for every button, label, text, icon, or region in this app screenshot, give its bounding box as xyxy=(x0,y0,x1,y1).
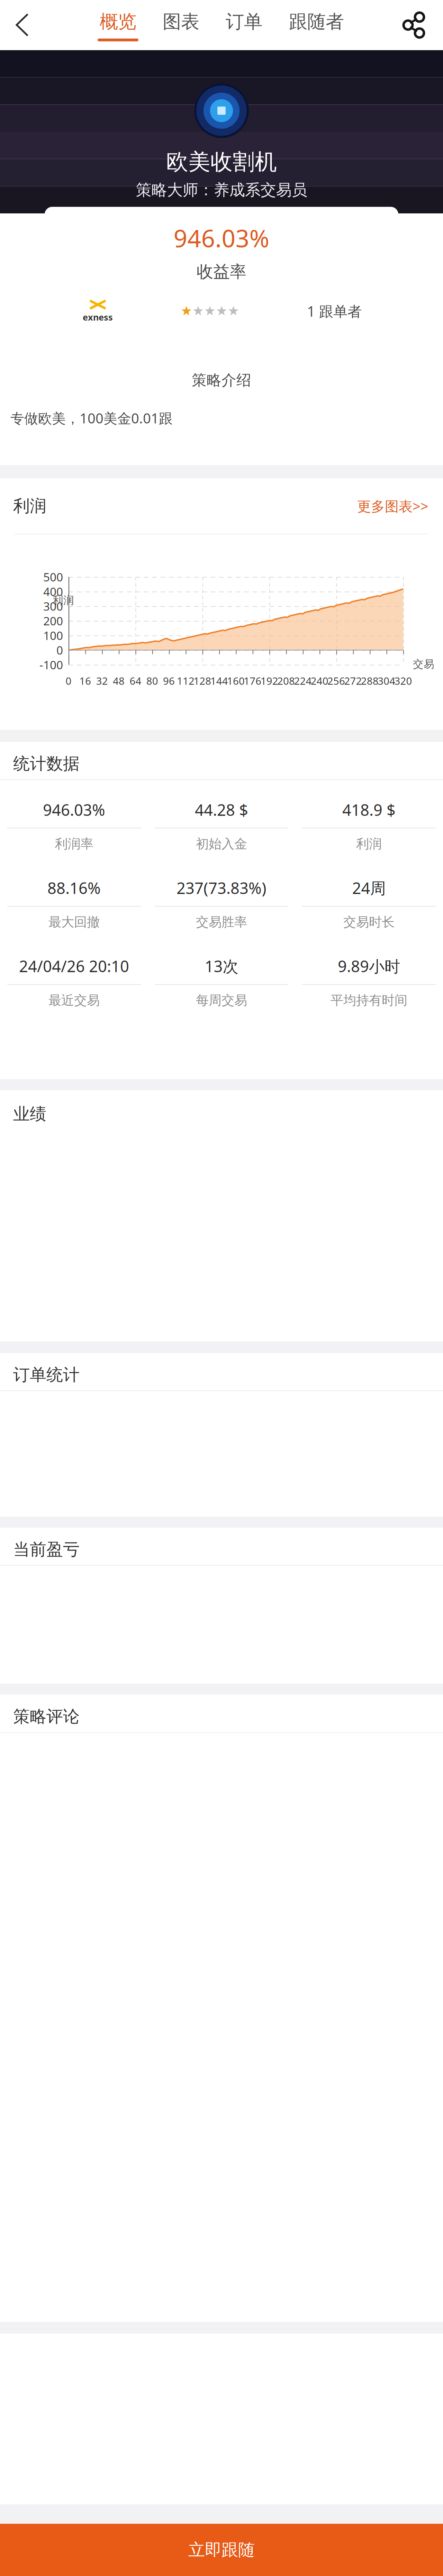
staticText: 利润率 xyxy=(55,836,93,852)
staticText: 96 xyxy=(163,674,175,688)
staticText: 192 xyxy=(261,674,278,688)
staticText: 策略介绍 xyxy=(192,371,251,389)
staticText: 160 xyxy=(227,674,245,688)
staticText: 418.9 $ xyxy=(342,799,396,820)
staticText: 946.03% xyxy=(174,222,269,254)
staticText: 初始入金 xyxy=(196,836,247,852)
staticText: 88.16% xyxy=(47,877,101,898)
staticText: 最近交易 xyxy=(48,992,100,1008)
staticText: 304 xyxy=(378,674,395,688)
staticText: 利润 xyxy=(53,594,74,607)
staticText: 240 xyxy=(311,674,328,688)
staticText: 24周 xyxy=(352,877,386,898)
staticText: 立即跟随 xyxy=(188,2540,255,2560)
staticText: 200 xyxy=(43,613,63,629)
staticText: 64 xyxy=(130,674,141,688)
staticText: 跟随者 xyxy=(289,10,344,33)
staticText: 237(73.83%) xyxy=(177,877,266,898)
staticText: 144 xyxy=(210,674,228,688)
staticText: exness xyxy=(83,311,113,323)
staticText: 图表 xyxy=(163,10,199,33)
button[interactable]: 订单 xyxy=(225,0,263,50)
staticText: 24/04/26 20:10 xyxy=(19,956,129,976)
button[interactable]: 更多图表>> xyxy=(357,494,428,518)
staticText: 9.89小时 xyxy=(338,956,400,976)
staticText: 16 xyxy=(79,674,91,688)
staticText: 208 xyxy=(277,674,295,688)
staticText: 112 xyxy=(177,674,195,688)
staticText: 288 xyxy=(361,674,379,688)
staticText: 专做欧美，100美金0.01跟 xyxy=(10,409,173,427)
staticText: 500 xyxy=(43,569,63,585)
staticText: 利润 xyxy=(13,496,46,516)
staticText: 13次 xyxy=(205,956,238,976)
staticText: 收益率 xyxy=(197,262,246,282)
staticText: 最大回撤 xyxy=(48,914,100,930)
staticText: 策略大师：养成系交易员 xyxy=(136,180,307,200)
staticText: 48 xyxy=(113,674,125,688)
staticText: 交易胜率 xyxy=(196,914,247,930)
staticText: 订单统计 xyxy=(13,1365,80,1385)
staticText: 400 xyxy=(43,584,63,599)
button[interactable]: 概览 xyxy=(98,0,138,50)
staticText: 概览 xyxy=(100,10,136,33)
staticText: 176 xyxy=(244,674,261,688)
staticText: 100 xyxy=(43,628,63,643)
staticText: 256 xyxy=(327,674,345,688)
staticText: 32 xyxy=(96,674,108,688)
staticText: 128 xyxy=(194,674,211,688)
staticText: 300 xyxy=(43,599,63,614)
staticText: 224 xyxy=(294,674,312,688)
button[interactable]: 跟随者 xyxy=(288,0,345,50)
staticText: 策略评论 xyxy=(13,1706,80,1727)
button[interactable]: Share xyxy=(395,0,433,50)
staticText: 每周交易 xyxy=(196,992,247,1008)
staticText: 1 跟单者 xyxy=(307,302,362,321)
staticText: 272 xyxy=(344,674,362,688)
staticText: 订单 xyxy=(226,10,262,33)
button[interactable]: Back xyxy=(15,0,29,50)
staticText: 欧美收割机 xyxy=(166,148,277,176)
staticText: 平均持有时间 xyxy=(331,992,407,1008)
staticText: 当前盈亏 xyxy=(13,1539,80,1560)
staticText: 更多图表>> xyxy=(357,497,428,515)
staticText: 44.28 $ xyxy=(195,799,248,820)
staticText: 0 xyxy=(56,642,63,658)
button[interactable]: 图表 xyxy=(162,0,200,50)
staticText: 统计数据 xyxy=(13,753,80,774)
staticText: 320 xyxy=(394,674,412,688)
staticText: 80 xyxy=(146,674,158,688)
staticText: 利润 xyxy=(356,836,382,852)
staticText: 业绩 xyxy=(13,1104,46,1124)
staticText: 0 xyxy=(66,674,71,688)
staticText: 946.03% xyxy=(43,799,105,820)
staticText: 交易 xyxy=(413,658,434,671)
staticText: -100 xyxy=(39,657,63,672)
staticText: 交易时长 xyxy=(343,914,395,930)
